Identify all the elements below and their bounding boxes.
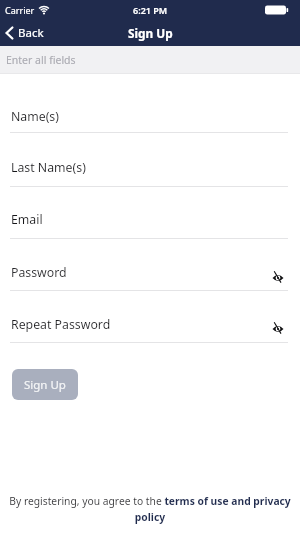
button[interactable]: By registering, you agree to the terms o… [0, 494, 300, 524]
staticText: 6:21 PM [133, 4, 168, 16]
staticText: Sign Up [128, 25, 173, 41]
staticText: Enter all fields [6, 53, 76, 67]
button[interactable]: Back [5, 25, 44, 41]
staticText: By registering, you agree to the terms o… [2, 494, 298, 524]
staticText: Email [11, 211, 43, 228]
button[interactable] [268, 268, 288, 288]
staticText: Repeat Password [11, 316, 111, 333]
staticText: Last Name(s) [11, 159, 86, 176]
button[interactable] [268, 319, 288, 339]
staticText: Password [11, 264, 67, 281]
staticText: Name(s) [11, 108, 59, 125]
staticText: Back [18, 25, 44, 41]
staticText: Carrier [5, 4, 35, 16]
button[interactable]: Sign Up [12, 369, 78, 400]
staticText: Sign Up [24, 377, 66, 393]
